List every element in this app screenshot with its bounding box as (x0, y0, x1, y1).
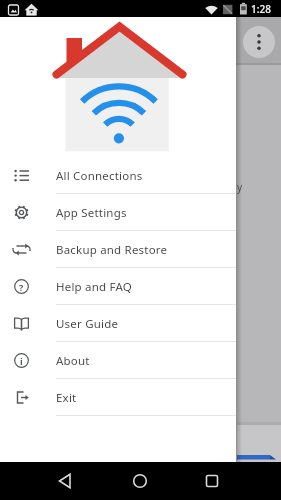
staticText: i (20, 355, 23, 367)
button[interactable]: App Settings (0, 194, 236, 231)
staticText: Help and FAQ (56, 279, 132, 295)
staticText: y (237, 180, 243, 194)
staticText: Exit (56, 390, 77, 406)
button[interactable]: User Guide (0, 305, 236, 342)
staticText: User Guide (56, 316, 119, 332)
button[interactable] (243, 26, 275, 58)
staticText: App Settings (56, 205, 127, 221)
staticText: 1:28 (251, 2, 271, 16)
staticText: Backup and Restore (56, 242, 168, 258)
staticText: All Connections (56, 168, 143, 184)
button[interactable] (51, 467, 79, 495)
staticText: ? (19, 281, 24, 293)
button[interactable]: Backup and Restore (0, 231, 236, 268)
button[interactable]: i (0, 342, 236, 379)
staticText: About (56, 353, 90, 369)
button[interactable]: ? (0, 268, 236, 305)
button[interactable] (126, 467, 154, 495)
button[interactable] (198, 467, 226, 495)
button[interactable]: All Connections (0, 157, 236, 194)
button[interactable]: Exit (0, 379, 236, 416)
